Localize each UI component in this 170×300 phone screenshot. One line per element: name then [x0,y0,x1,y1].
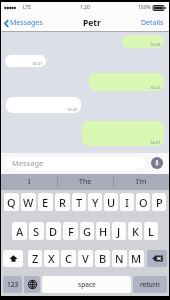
staticText: I [125,195,129,210]
staticText: D [49,224,58,239]
button[interactable]: Record voice message [151,157,163,169]
button[interactable]: R [55,193,70,211]
staticText: space [78,280,96,289]
staticText: H [99,224,108,239]
staticText: J [117,224,121,239]
staticText: Messages [10,18,43,28]
button[interactable]: Z [28,250,42,267]
button[interactable]: G [80,222,94,240]
staticText: U [107,195,116,210]
staticText: S [33,224,40,239]
staticText: M [131,251,142,266]
staticText: 14:21 [32,61,43,66]
button[interactable]: Y [88,193,102,211]
button[interactable]: T [72,193,86,211]
button[interactable]: 14:21 [5,55,46,67]
staticText: C [65,251,72,266]
button[interactable]: I [1,174,57,190]
staticText: Q [7,195,16,210]
button[interactable]: The [58,174,113,190]
staticText: Y [92,195,99,210]
button[interactable]: D [46,222,61,240]
button[interactable]: J [112,222,126,240]
staticText: E [42,195,49,210]
button[interactable]: 14:20 [122,35,164,48]
staticText: return [140,280,160,289]
button[interactable]: Message [6,157,145,169]
staticText: LTE [23,4,32,11]
staticText: N [115,251,124,266]
staticText: W [23,195,34,210]
button[interactable]: Shift [3,250,23,267]
button[interactable]: 14:27 [82,121,164,146]
staticText: G [83,224,91,239]
button[interactable]: U [104,193,118,211]
staticText: 14:27 [150,140,161,145]
staticText: V [82,251,89,266]
button[interactable]: Messages [3,18,44,28]
staticText: F [68,224,74,239]
staticText: 14:20 [150,42,161,47]
button[interactable]: X [44,250,59,267]
button[interactable]: I'm [114,174,169,190]
staticText: B [99,251,107,266]
staticText: I'm [136,177,147,187]
button[interactable]: B [95,250,110,267]
staticText: 1:20 [80,4,90,11]
staticText: 14:22 [150,85,161,90]
button[interactable]: Switch keyboard [24,276,40,293]
button[interactable]: Q [4,193,19,211]
staticText: O [139,195,148,210]
button[interactable]: S [29,222,44,240]
button[interactable]: Details [140,18,165,28]
button[interactable]: 14:25 [6,97,81,113]
button[interactable]: E [38,193,53,211]
button[interactable]: F [63,222,78,240]
button[interactable]: space [42,276,131,293]
button[interactable]: I [120,193,134,211]
button[interactable]: return [133,276,167,293]
button[interactable]: M [129,250,144,267]
button[interactable]: A [12,222,27,240]
button[interactable]: C [61,250,76,267]
button[interactable]: K [128,222,142,240]
staticText: Z [32,251,39,266]
staticText: L [148,224,154,239]
button[interactable]: N [112,250,127,267]
staticText: 14:25 [67,107,78,112]
button[interactable]: O [136,193,150,211]
staticText: Petr [83,17,101,29]
button[interactable]: 14:22 [89,73,164,91]
button[interactable]: L [144,222,158,240]
button[interactable]: H [96,222,110,240]
staticText: K [132,224,139,239]
staticText: Message [12,158,44,168]
staticText: T [76,195,83,210]
staticText: A [16,224,24,239]
button[interactable]: W [21,193,36,211]
staticText: The [79,177,92,187]
staticText: 100% [138,4,151,11]
button[interactable]: Backspace [147,250,167,267]
button[interactable]: P [152,193,166,211]
button[interactable]: V [78,250,93,267]
staticText: 123 [7,280,19,289]
button[interactable]: 123 [3,276,22,293]
staticText: I [28,177,31,187]
staticText: P [156,195,163,210]
staticText: X [48,251,55,266]
staticText: R [59,195,66,210]
